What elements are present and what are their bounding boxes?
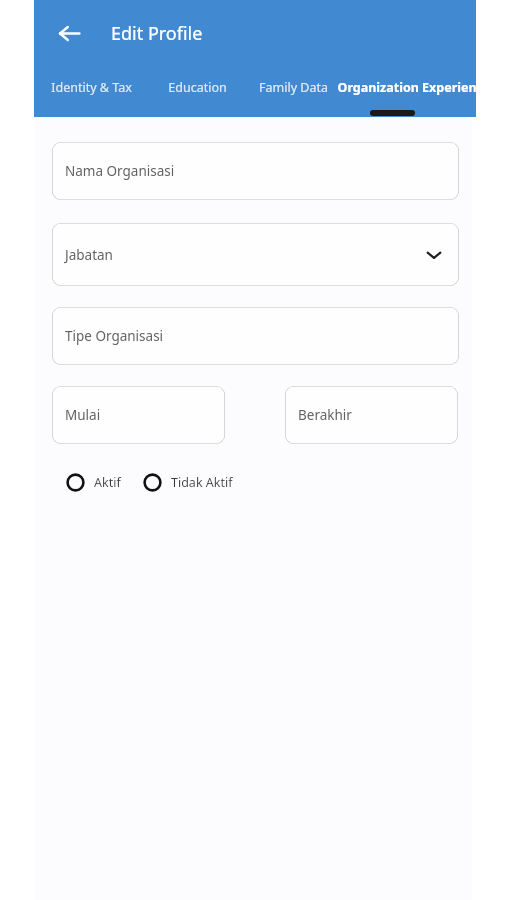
staticText: Nama Organisasi xyxy=(65,162,175,180)
button[interactable]: Family Data xyxy=(237,66,349,108)
button[interactable]: Tipe Organisasi xyxy=(52,307,459,365)
button[interactable]: Aktif xyxy=(66,473,121,492)
staticText: Aktif xyxy=(94,474,121,491)
staticText: Tidak Aktif xyxy=(171,474,233,491)
staticText: Berakhir xyxy=(298,406,352,424)
staticText: Family Data xyxy=(259,79,328,96)
staticText: Organization Experience xyxy=(337,79,491,96)
staticText: Edit Profile xyxy=(111,21,203,46)
button[interactable]: Organization Experience xyxy=(329,66,499,108)
button[interactable]: Berakhir xyxy=(285,386,458,444)
staticText: Identity & Tax xyxy=(51,79,132,96)
button[interactable]: Nama Organisasi xyxy=(52,142,459,200)
button[interactable]: Back xyxy=(52,16,86,50)
button[interactable]: Tidak Aktif xyxy=(143,473,233,492)
staticText: Tipe Organisasi xyxy=(65,327,164,345)
button[interactable]: Education xyxy=(142,66,252,108)
button[interactable]: Mulai xyxy=(52,386,225,444)
staticText: Jabatan xyxy=(65,246,113,264)
button[interactable]: Identity & Tax xyxy=(26,66,156,108)
button[interactable]: Jabatan xyxy=(52,223,459,286)
staticText: Education xyxy=(168,79,227,96)
staticText: Mulai xyxy=(65,406,101,424)
